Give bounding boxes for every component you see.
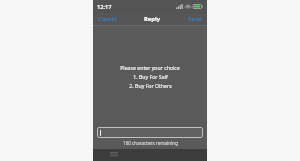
staticText: Please enter your choice [120, 64, 180, 71]
button[interactable]: Cancel [97, 13, 118, 25]
staticText: 12:17 [97, 3, 112, 11]
button[interactable]: Keyboard [109, 150, 119, 160]
staticText: Cancel [98, 15, 117, 23]
staticText: 2. Buy For Others [129, 82, 172, 89]
button[interactable] [97, 127, 203, 138]
staticText: Send [188, 15, 202, 23]
staticText: 160 characters remaining [123, 140, 178, 146]
staticText: Reply [144, 15, 160, 23]
button[interactable]: Send [187, 13, 203, 25]
staticText: 1. Buy For Self [133, 73, 168, 80]
